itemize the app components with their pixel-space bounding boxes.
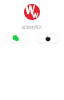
staticText: 欢迎使用示	[22, 25, 42, 30]
button[interactable]: Continue with Apple	[36, 34, 59, 43]
button[interactable]: Continue with WeChat	[4, 34, 27, 43]
